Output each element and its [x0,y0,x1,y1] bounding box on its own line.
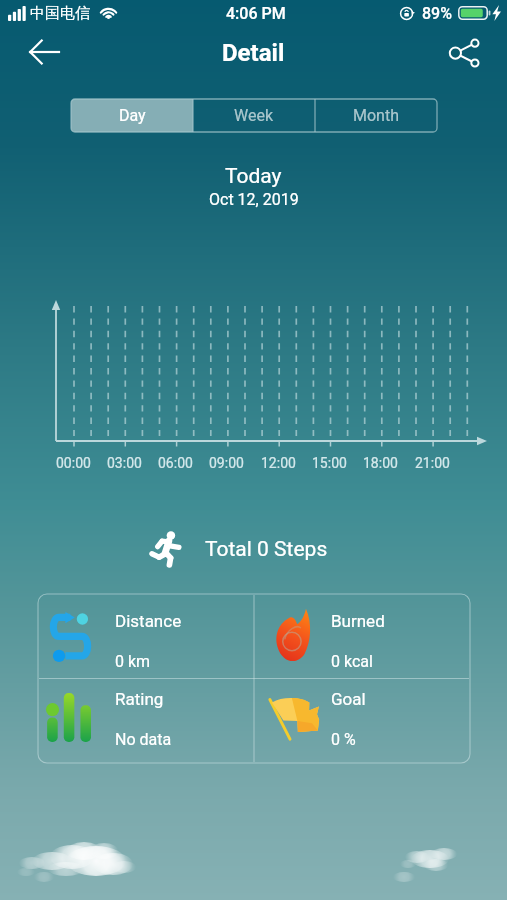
staticText: 89% [422,4,452,23]
button[interactable]: Week [193,99,315,132]
staticText: 00:00 [56,455,91,471]
button[interactable]: Goal [254,678,470,763]
staticText: Goal [331,689,366,709]
staticText: 18:00 [363,455,398,471]
staticText: Week [234,106,274,125]
staticText: No data [115,730,172,749]
staticText: Burned [331,611,385,631]
staticText: 15:00 [312,455,347,471]
staticText: 0 % [331,730,356,749]
button[interactable]: Burned [254,594,470,678]
button[interactable]: Day [71,99,193,132]
staticText: 09:00 [209,455,244,471]
staticText: 0 km [115,652,151,671]
staticText: Today [225,164,282,189]
staticText: Detail [222,39,285,67]
staticText: 06:00 [158,455,193,471]
button[interactable]: Month [315,99,437,132]
button[interactable]: Rating [38,678,254,763]
staticText: 21:00 [415,455,450,471]
staticText: 中国电信 [30,4,90,23]
staticText: 4:06 PM [226,4,286,23]
staticText: Rating [115,689,164,709]
button[interactable]: Back [22,30,66,74]
button[interactable]: Share [443,32,487,76]
staticText: 0 kcal [331,652,373,671]
staticText: 03:00 [107,455,142,471]
staticText: 12:00 [261,455,296,471]
staticText: Month [353,106,399,125]
staticText: Oct 12, 2019 [209,190,299,209]
staticText: Total 0 Steps [205,537,328,562]
button[interactable]: Distance [38,594,254,678]
staticText: Day [119,106,146,125]
staticText: Distance [115,611,182,631]
